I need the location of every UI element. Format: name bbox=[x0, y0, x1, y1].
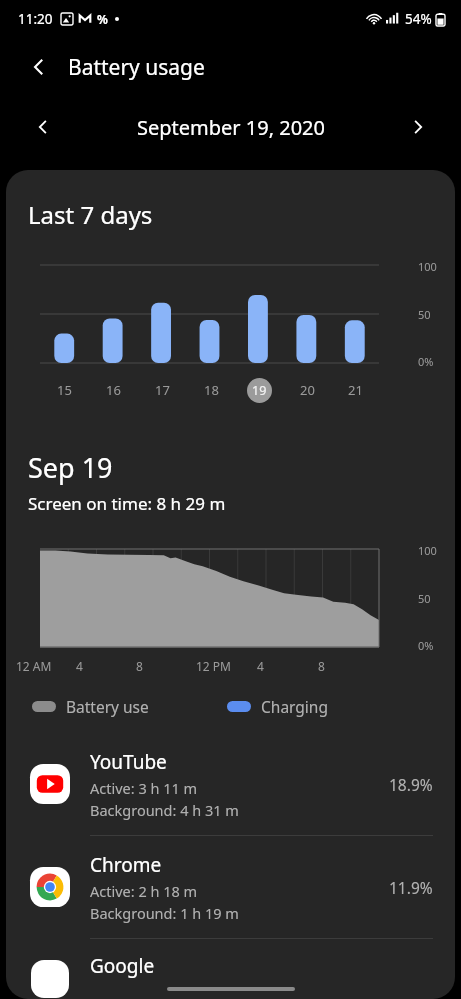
staticText: 16 bbox=[106, 381, 121, 399]
button[interactable]: Back bbox=[22, 50, 56, 84]
button[interactable]: Next day bbox=[401, 110, 435, 144]
staticText: 4 bbox=[76, 658, 83, 674]
staticText: 18 bbox=[204, 381, 219, 399]
staticText: Battery use bbox=[66, 696, 149, 717]
staticText: Sep 19 bbox=[28, 449, 113, 486]
staticText: 0% bbox=[418, 638, 434, 653]
staticText: 8 bbox=[136, 658, 143, 674]
staticText: 12 PM bbox=[196, 658, 231, 674]
button[interactable]: Battery use bbox=[32, 696, 149, 717]
staticText: YouTube bbox=[90, 749, 167, 775]
staticText: 100 bbox=[418, 259, 437, 274]
staticText: 0% bbox=[418, 354, 434, 369]
staticText: 20 bbox=[300, 381, 315, 399]
staticText: Active: 2 h 18 m bbox=[90, 881, 198, 901]
button[interactable]: Google bbox=[6, 939, 455, 999]
staticText: 18.9% bbox=[389, 774, 433, 795]
staticText: 4 bbox=[257, 658, 264, 674]
staticText: Battery usage bbox=[68, 53, 205, 82]
button[interactable]: YouTube bbox=[6, 733, 455, 835]
staticText: % bbox=[97, 11, 108, 27]
staticText: 15 bbox=[57, 381, 72, 399]
button[interactable]: 15 bbox=[57, 381, 72, 399]
button[interactable]: Previous day bbox=[26, 110, 60, 144]
button[interactable]: Charging bbox=[227, 696, 328, 717]
staticText: Charging bbox=[261, 696, 328, 717]
staticText: Chrome bbox=[90, 852, 162, 878]
staticText: Background: 1 h 19 m bbox=[90, 903, 239, 923]
staticText: September 19, 2020 bbox=[137, 114, 325, 141]
staticText: 19 bbox=[252, 382, 267, 399]
button[interactable]: 17 bbox=[155, 381, 170, 399]
staticText: 21 bbox=[348, 381, 363, 399]
staticText: 8 bbox=[318, 658, 325, 674]
staticText: Screen on time: 8 h 29 m bbox=[28, 492, 226, 515]
button[interactable]: 16 bbox=[106, 381, 121, 399]
staticText: 50 bbox=[418, 307, 431, 322]
button[interactable]: 19 bbox=[247, 378, 272, 403]
staticText: 17 bbox=[155, 381, 170, 399]
staticText: 12 AM bbox=[16, 658, 52, 674]
staticText: 100 bbox=[418, 543, 437, 558]
button[interactable]: 18 bbox=[204, 381, 219, 399]
staticText: 11.9% bbox=[389, 877, 433, 898]
staticText: Last 7 days bbox=[28, 198, 153, 231]
button[interactable]: 20 bbox=[300, 381, 315, 399]
staticText: 54% bbox=[405, 10, 432, 28]
staticText: Active: 3 h 11 m bbox=[90, 778, 198, 798]
staticText: Google bbox=[90, 953, 155, 979]
staticText: 50 bbox=[418, 591, 431, 606]
staticText: 11:20 bbox=[18, 10, 53, 28]
button[interactable]: 21 bbox=[348, 381, 363, 399]
staticText: Background: 4 h 31 m bbox=[90, 800, 239, 820]
button[interactable]: Chrome bbox=[6, 836, 455, 938]
